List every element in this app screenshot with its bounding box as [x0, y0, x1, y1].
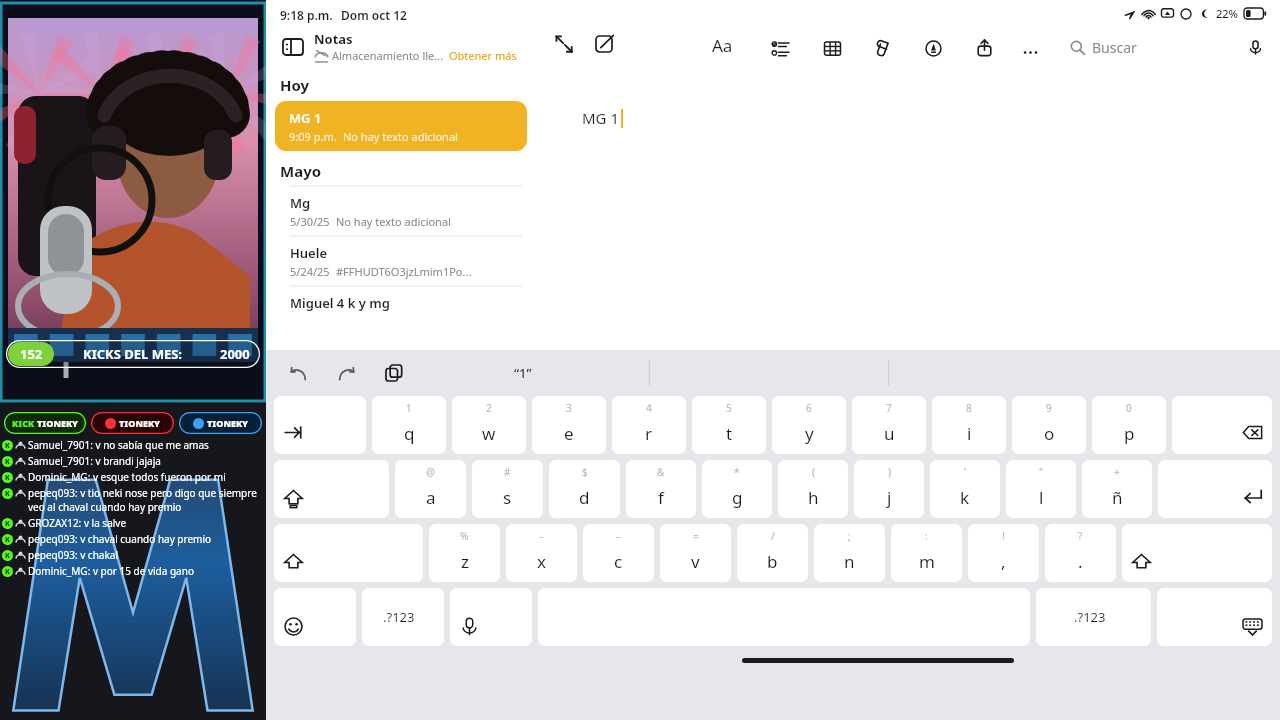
staticText: r [645, 422, 653, 445]
button[interactable]: Checklist [768, 36, 792, 60]
button[interactable]: Toggle sidebar [280, 34, 306, 60]
button[interactable]: Paste [382, 361, 406, 385]
button[interactable]: ) [854, 460, 924, 518]
staticText: Mg [290, 194, 311, 212]
staticText: z [461, 550, 469, 573]
button[interactable]: Social TIONEKY [91, 412, 174, 434]
staticText: $ [582, 465, 588, 479]
button[interactable]: Return [1158, 460, 1272, 518]
button[interactable]: Tab [274, 396, 366, 454]
staticText: No hay texto adicional [343, 129, 458, 144]
staticText: #FFHUDT6O3jzLmim1Po... [336, 264, 472, 279]
button[interactable]: " [1006, 460, 1076, 518]
button[interactable]: Markup [921, 36, 945, 60]
button[interactable]: 3 [532, 396, 606, 454]
button[interactable]: Undo [286, 361, 310, 385]
button[interactable]: Huele [266, 236, 536, 286]
button[interactable]: .?123 [1036, 588, 1151, 646]
button[interactable]: Delete [1172, 396, 1272, 454]
button[interactable]: Collapse [552, 32, 576, 56]
button[interactable]: ? [1045, 524, 1116, 582]
button[interactable]: Table [820, 36, 844, 60]
button[interactable]: ' [930, 460, 1000, 518]
button[interactable]: @ [395, 460, 466, 518]
button[interactable]: $ [549, 460, 620, 518]
staticText: .?123 [1074, 608, 1106, 626]
staticText: K [5, 457, 10, 467]
button[interactable]: ( [778, 460, 848, 518]
button[interactable]: = [660, 524, 731, 582]
staticText: Samuel_7901: v brandi jajaja [28, 454, 161, 468]
staticText: – [616, 529, 621, 543]
button[interactable]: Emoji [274, 588, 356, 646]
button[interactable]: / [737, 524, 808, 582]
staticText: v [691, 550, 700, 573]
button[interactable]: – [583, 524, 654, 582]
button[interactable]: Social TIONEKY [4, 412, 86, 434]
staticText: Mayo [280, 161, 322, 181]
staticText: pepeq093: v chaval cuando hay premio [28, 532, 212, 546]
button[interactable]: 8 [932, 396, 1006, 454]
button[interactable]: Shift [274, 524, 423, 582]
button[interactable]: “1” [514, 364, 532, 382]
staticText: pepeq093: v chakal [28, 548, 118, 562]
button[interactable]: Share [972, 35, 996, 59]
button[interactable]: : [891, 524, 962, 582]
button[interactable]: Dictation [450, 588, 532, 646]
button[interactable]: New note [592, 32, 616, 56]
staticText: KICK [12, 417, 35, 429]
button[interactable]: Format text [696, 32, 720, 56]
button[interactable]: 2 [452, 396, 526, 454]
button[interactable]: Attach [870, 36, 894, 60]
staticText: 22% [1216, 6, 1238, 21]
button[interactable]: Aa [712, 34, 733, 57]
staticText: ñ [1112, 486, 1123, 509]
staticText: = [693, 529, 699, 543]
staticText: 9:09 p.m. [289, 129, 337, 144]
button[interactable]: 0 [1092, 396, 1166, 454]
button[interactable]: Redo [334, 361, 358, 385]
staticText: # [504, 465, 511, 479]
button[interactable]: 5 [692, 396, 766, 454]
button[interactable]: - [506, 524, 577, 582]
button[interactable]: Dictate [1244, 36, 1266, 58]
button[interactable]: Hide keyboard [1157, 588, 1272, 646]
staticText: KICKS DEL MES: [83, 345, 183, 363]
staticText: g [732, 486, 743, 509]
button[interactable]: Obtener más [449, 48, 517, 63]
button[interactable]: Social TIONEKY [179, 412, 262, 434]
button[interactable]: Mg [266, 186, 536, 236]
button[interactable]: Caps lock [274, 460, 389, 518]
button[interactable]: 1 [372, 396, 446, 454]
button[interactable]: * [702, 460, 772, 518]
staticText: m [919, 550, 935, 573]
staticText: q [404, 422, 415, 445]
staticText: " [1039, 465, 1044, 479]
staticText: K [5, 535, 10, 545]
button[interactable]: More [1018, 40, 1042, 64]
staticText: y [805, 422, 814, 445]
button[interactable]: Buscar [1068, 36, 1139, 59]
button[interactable]: 4 [612, 396, 686, 454]
button[interactable]: & [626, 460, 696, 518]
staticText: 5 [726, 401, 732, 415]
button[interactable]: ! [968, 524, 1039, 582]
staticText: k [960, 486, 970, 509]
button[interactable]: + [1082, 460, 1152, 518]
button[interactable]: % [429, 524, 500, 582]
staticText: x [537, 550, 546, 573]
staticText: K [5, 489, 10, 499]
staticText: h [808, 486, 819, 509]
button[interactable]: Shift right [1122, 524, 1272, 582]
staticText: 5/30/25 [290, 214, 330, 229]
staticText: pepeq093: v tio neki nose pero digo que … [28, 486, 264, 514]
button[interactable]: 7 [852, 396, 926, 454]
button[interactable]: .?123 [362, 588, 444, 646]
button[interactable]: ; [814, 524, 885, 582]
staticText: 152 [20, 345, 43, 363]
button[interactable]: 9 [1012, 396, 1086, 454]
button[interactable]: MG 1 [275, 101, 527, 151]
button[interactable]: # [472, 460, 543, 518]
button[interactable]: 6 [772, 396, 846, 454]
